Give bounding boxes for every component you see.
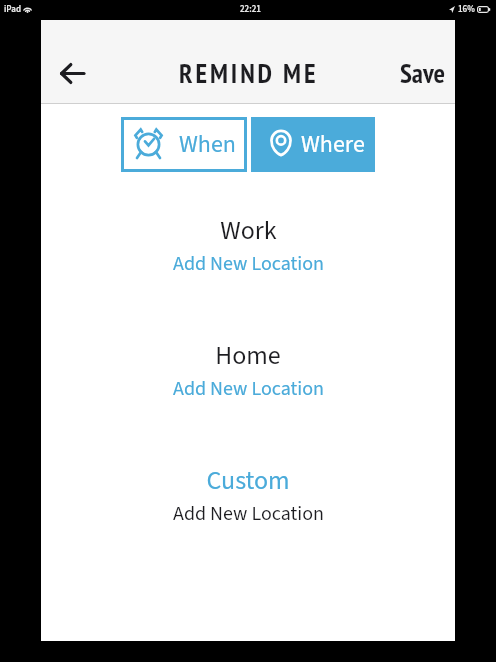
- button[interactable]: Work: [220, 212, 277, 249]
- staticText: 22:21: [240, 3, 261, 16]
- button[interactable]: Where: [251, 117, 375, 172]
- button[interactable]: Custom: [206, 462, 290, 499]
- button[interactable]: Add New Location: [173, 500, 324, 528]
- staticText: Save: [400, 56, 446, 91]
- button[interactable]: Back: [41, 51, 103, 95]
- button[interactable]: Add New Location: [173, 375, 324, 403]
- staticText: Where: [301, 127, 365, 161]
- staticText: Add New Location: [173, 250, 324, 278]
- staticText: Add New Location: [173, 500, 324, 528]
- staticText: Custom: [206, 462, 290, 499]
- button[interactable]: Save: [400, 56, 446, 91]
- button[interactable]: Home: [215, 337, 281, 374]
- staticText: When: [179, 127, 236, 161]
- staticText: 16%: [458, 3, 475, 16]
- staticText: Add New Location: [173, 375, 324, 403]
- staticText: REMIND ME: [179, 56, 319, 91]
- staticText: iPad: [4, 3, 21, 16]
- staticText: Home: [215, 337, 281, 374]
- button[interactable]: When: [121, 117, 247, 172]
- button[interactable]: Add New Location: [173, 250, 324, 278]
- staticText: Work: [220, 212, 277, 249]
